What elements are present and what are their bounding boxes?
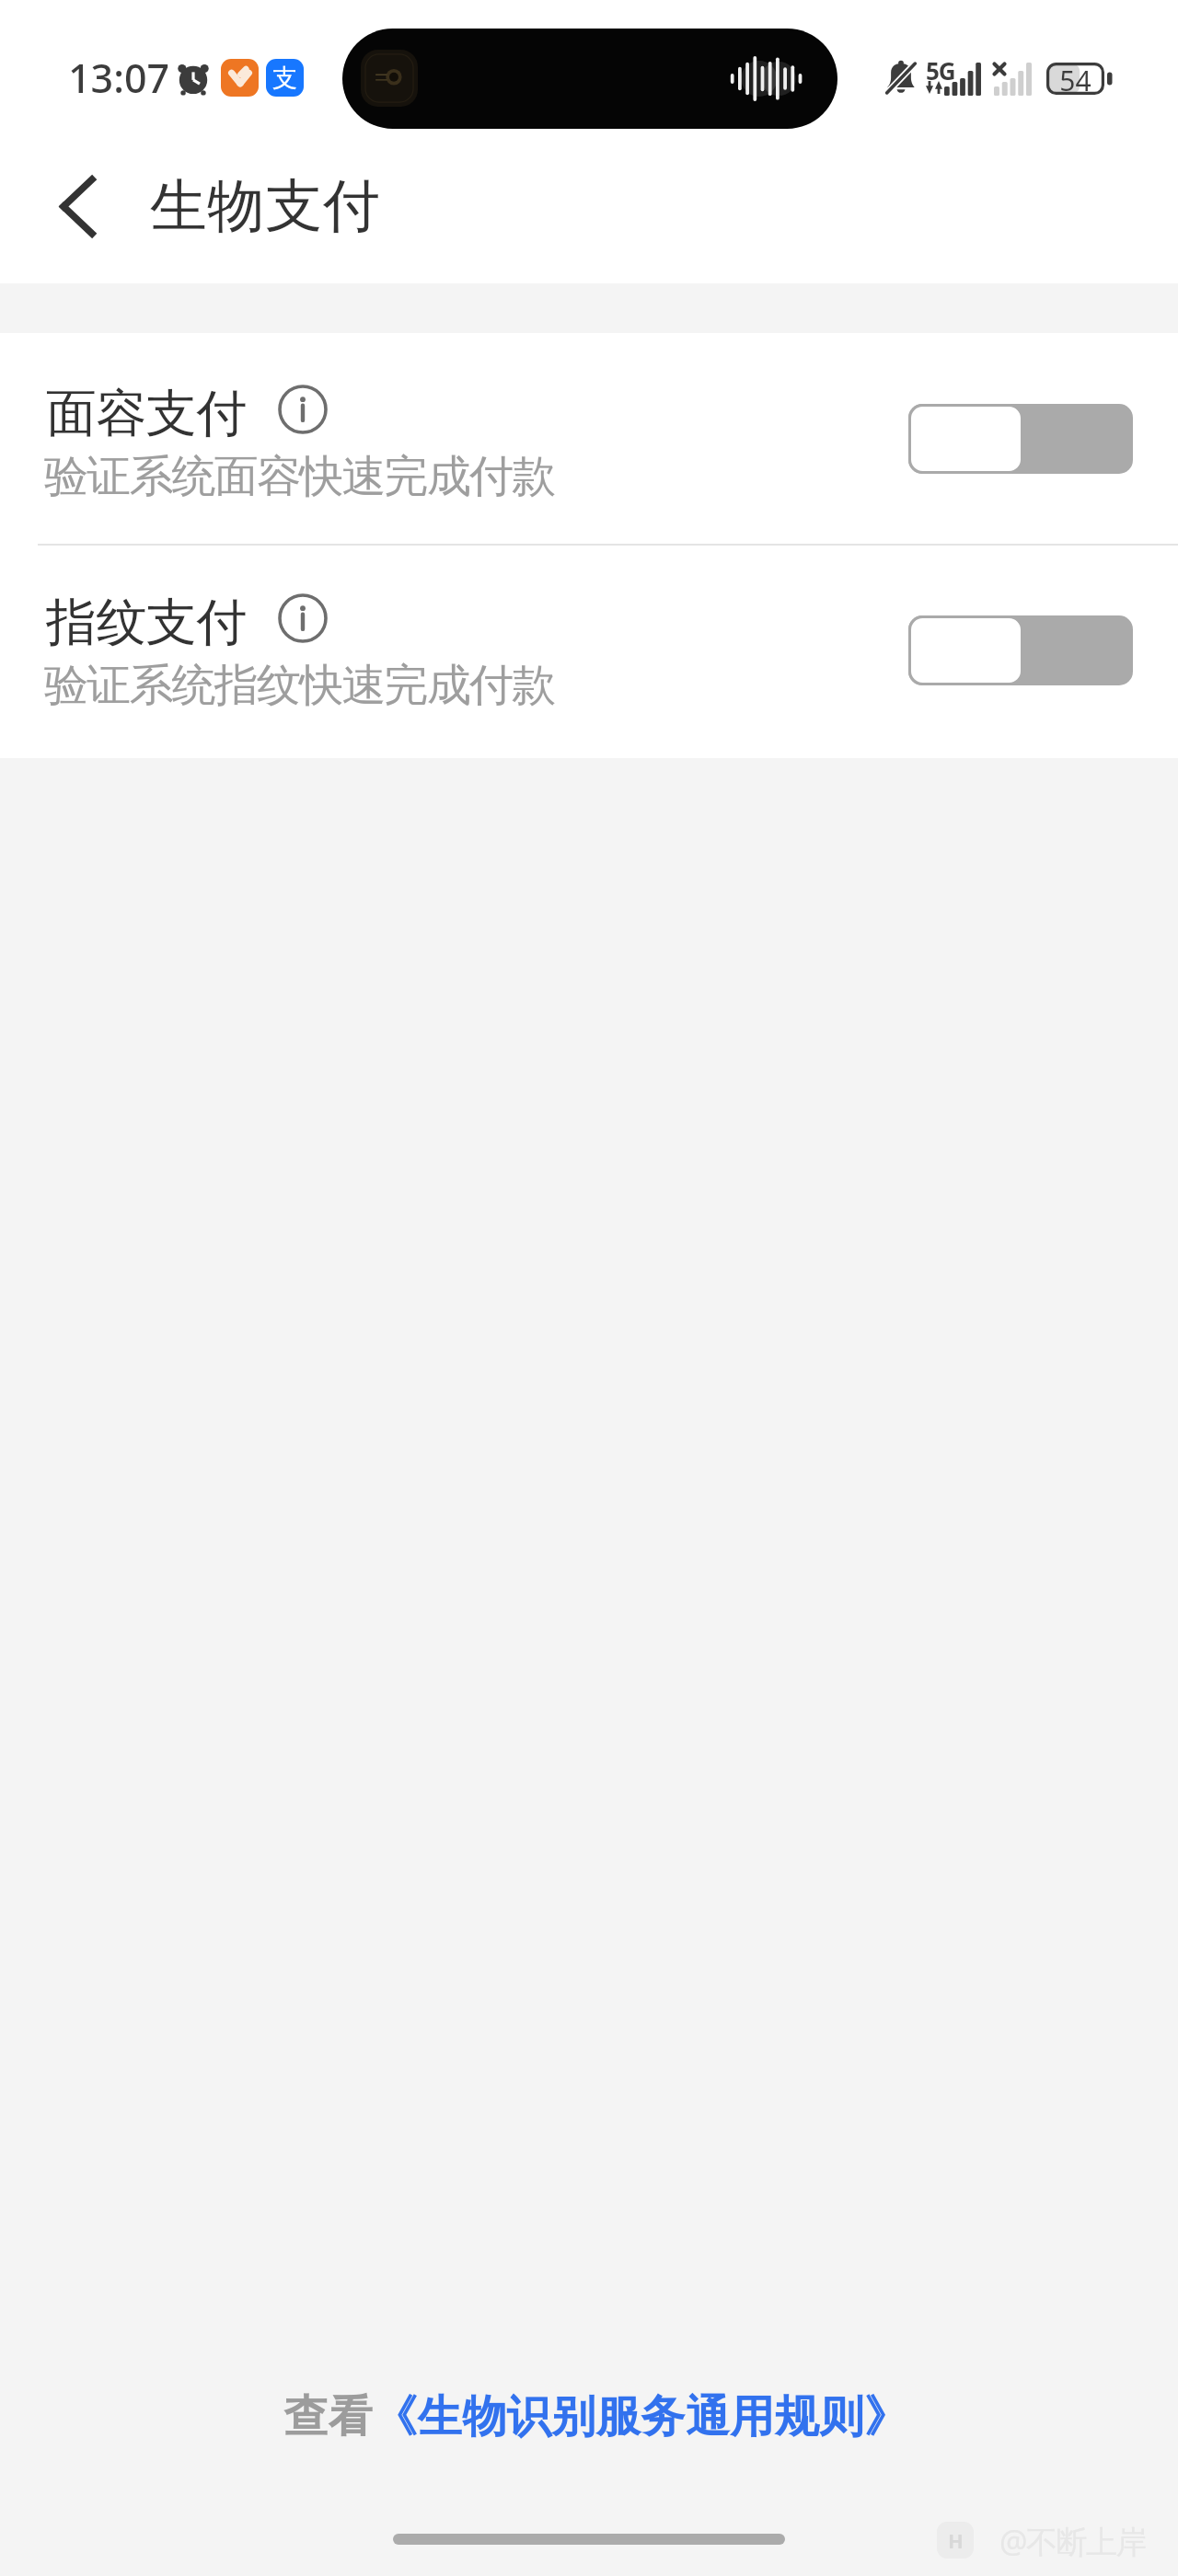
staticText: 5G [926,54,955,86]
button[interactable]: 面容支付 [0,333,1178,545]
button[interactable]: 查看《生物识别服务通用规则》 [269,2380,923,2454]
button[interactable]: 指纹支付 开关，已关闭 [908,615,1133,685]
button[interactable]: Back [22,151,133,261]
button[interactable]: 面容支付 说明 [278,385,328,434]
staticText: H [948,2526,964,2554]
staticText: @不断上岸 [999,2520,1147,2562]
staticText: 查看《生物识别服务通用规则》 [283,2389,908,2444]
staticText: 面容支付 [46,382,247,445]
button[interactable]: 指纹支付 [0,542,1178,758]
button[interactable]: 面容支付 开关，已关闭 [908,404,1133,474]
button[interactable]: 指纹支付 说明 [278,593,328,643]
staticText: 生物支付 [150,170,381,242]
staticText: 支 [272,63,297,94]
staticText: 指纹支付 [46,591,247,654]
staticText: 验证系统面容快速完成付款 [44,449,555,504]
staticText: 54 [1046,62,1104,94]
staticText: 验证系统指纹快速完成付款 [44,658,555,713]
staticText: 13:07 [68,51,170,105]
